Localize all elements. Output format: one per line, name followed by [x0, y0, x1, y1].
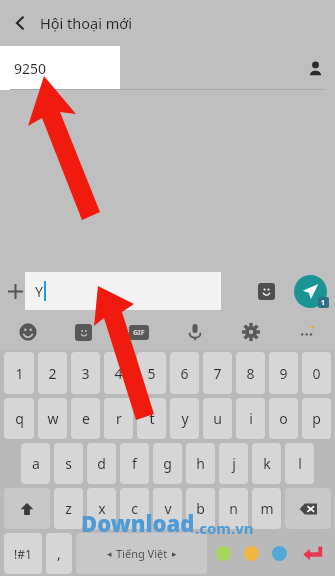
button[interactable]: Emoji — [0, 314, 55, 350]
button[interactable]: b — [186, 488, 215, 529]
button[interactable]: 5 — [137, 352, 166, 394]
staticText: Tiếng Việt — [116, 546, 168, 561]
button[interactable]: 4 — [104, 352, 133, 394]
staticText: n — [229, 499, 238, 518]
staticText: m — [260, 499, 274, 518]
staticText: 8 — [246, 364, 255, 383]
staticText: r — [116, 409, 122, 428]
button[interactable]: g — [153, 443, 182, 484]
staticText: u — [213, 409, 222, 428]
button[interactable]: o — [269, 398, 298, 439]
staticText: 1 — [15, 364, 24, 383]
staticText: i — [249, 409, 253, 428]
button[interactable]: 1 — [4, 352, 34, 394]
button[interactable]: z — [54, 488, 83, 529]
button[interactable]: Orange — [237, 531, 265, 576]
button[interactable]: n — [219, 488, 248, 529]
button[interactable]: u — [203, 398, 232, 439]
button[interactable]: h — [186, 443, 215, 484]
button[interactable]: Settings — [223, 314, 279, 350]
button[interactable]: Add attachment — [2, 278, 28, 304]
button[interactable]: r — [104, 398, 133, 439]
staticText: y — [181, 409, 189, 428]
button[interactable]: q — [4, 398, 34, 439]
staticText: c — [131, 499, 138, 518]
button[interactable]: Enter — [295, 533, 331, 574]
staticText: 0 — [312, 364, 321, 383]
staticText: Hội thoại mới — [40, 13, 132, 33]
button[interactable]: Stickers — [55, 314, 111, 350]
staticText: l — [298, 454, 302, 473]
button[interactable]: Voice input — [167, 314, 223, 350]
staticText: h — [196, 454, 205, 473]
button[interactable]: t — [137, 398, 166, 439]
staticText: GIF — [133, 328, 145, 338]
staticText: !#1 — [14, 546, 32, 562]
staticText: x — [98, 499, 106, 518]
button[interactable]: !#1 — [4, 533, 42, 574]
button[interactable]: More — [279, 314, 335, 350]
staticText: 6 — [180, 364, 189, 383]
staticText: 5 — [147, 364, 156, 383]
button[interactable]: 7 — [203, 352, 232, 394]
button[interactable]: v — [153, 488, 182, 529]
button[interactable]: y — [170, 398, 199, 439]
button[interactable]: Back — [0, 0, 40, 46]
staticText: ▸ — [172, 549, 177, 559]
button[interactable]: w — [38, 398, 67, 439]
button[interactable]: i — [236, 398, 265, 439]
button[interactable]: f — [120, 443, 149, 484]
staticText: o — [279, 409, 288, 428]
button[interactable]: , — [46, 533, 72, 574]
staticText: d — [97, 454, 106, 473]
button[interactable]: 9 — [269, 352, 298, 394]
button[interactable]: 9250 — [0, 46, 120, 90]
button[interactable]: Y — [25, 272, 221, 310]
staticText: 3 — [81, 364, 90, 383]
staticText: 7 — [213, 364, 222, 383]
button[interactable]: Blue — [265, 531, 293, 576]
staticText: q — [15, 409, 24, 428]
button[interactable]: m — [252, 488, 281, 529]
staticText: 2 — [48, 364, 57, 383]
staticText: t — [149, 409, 155, 428]
staticText: ◂ — [107, 549, 112, 559]
staticText: v — [164, 499, 172, 518]
staticText: f — [132, 454, 137, 473]
staticText: 9 — [279, 364, 288, 383]
button[interactable]: p — [302, 398, 331, 439]
staticText: k — [263, 454, 271, 473]
button[interactable]: Add contact — [295, 48, 335, 88]
button[interactable]: 2 — [38, 352, 67, 394]
button[interactable]: x — [87, 488, 116, 529]
staticText: p — [312, 409, 321, 428]
button[interactable]: c — [120, 488, 149, 529]
button[interactable]: ◂ — [76, 533, 207, 574]
staticText: Y — [35, 282, 43, 301]
button[interactable]: Stickers — [252, 277, 280, 305]
button[interactable]: k — [252, 443, 281, 484]
staticText: Download — [81, 508, 195, 538]
button[interactable]: 0 — [302, 352, 331, 394]
staticText: s — [65, 454, 72, 473]
staticText: e — [82, 409, 90, 428]
button[interactable]: Shift — [4, 488, 50, 529]
staticText: b — [196, 499, 205, 518]
button[interactable]: l — [285, 443, 314, 484]
button[interactable]: GIF — [111, 314, 167, 350]
staticText: , — [57, 544, 61, 563]
button[interactable]: 6 — [170, 352, 199, 394]
button[interactable]: 8 — [236, 352, 265, 394]
button[interactable]: j — [219, 443, 248, 484]
button[interactable]: a — [21, 443, 50, 484]
staticText: .com.vn — [195, 518, 254, 538]
button[interactable]: Backspace — [285, 488, 331, 529]
button[interactable]: 3 — [71, 352, 100, 394]
button[interactable]: Send — [294, 275, 327, 308]
button[interactable]: s — [54, 443, 83, 484]
staticText: j — [232, 454, 236, 473]
button[interactable]: Green — [209, 531, 237, 576]
staticText: 9250 — [14, 59, 47, 78]
button[interactable]: e — [71, 398, 100, 439]
button[interactable]: d — [87, 443, 116, 484]
